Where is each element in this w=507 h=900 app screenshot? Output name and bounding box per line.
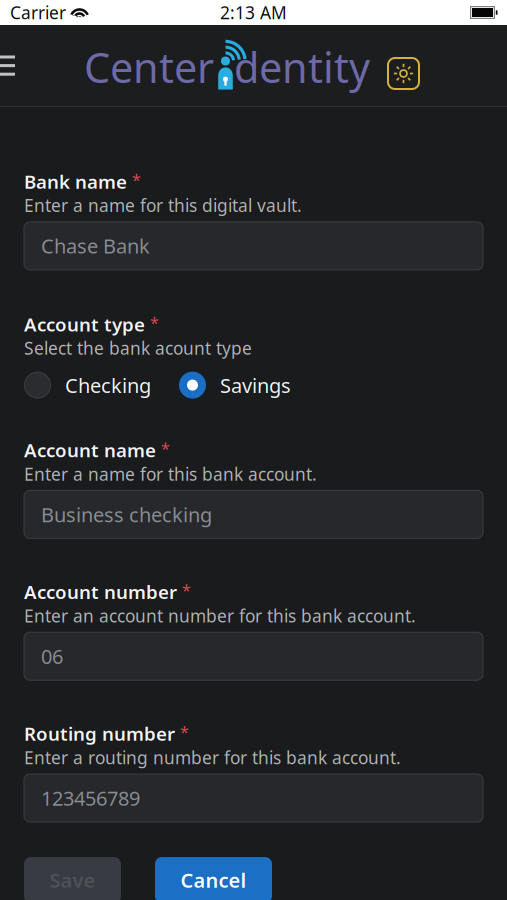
staticText: Carrier [10,1,66,24]
staticText: Enter a name for this bank account. [24,462,317,485]
staticText: Routing number [24,721,175,746]
button[interactable]: Checking [24,372,151,399]
staticText: Save [49,867,95,893]
button[interactable]: Chase Bank [24,222,483,270]
staticText: Enter an account number for this bank ac… [24,604,416,627]
staticText: Savings [220,372,291,398]
staticText: * [150,312,159,333]
button[interactable]: 06 [24,632,483,680]
button[interactable]: Savings [179,372,291,399]
staticText: Select the bank acount type [24,337,252,360]
staticText: Enter a name for this digital vault. [24,194,302,217]
staticText: Account type [24,312,145,337]
staticText: Business checking [41,501,212,528]
staticText: * [132,169,141,190]
button[interactable]: Business checking [24,490,483,538]
staticText: dentity [234,40,370,94]
staticText: Account number [24,579,177,604]
staticText: * [182,579,191,601]
staticText: * [161,438,170,459]
staticText: 06 [41,643,63,670]
staticText: 2:13 AM [220,1,287,24]
staticText: Chase Bank [41,232,150,259]
staticText: Cancel [180,867,246,893]
button[interactable]: Cancel [155,857,272,900]
button[interactable]: 123456789 [24,774,483,822]
button[interactable]: Open menu [0,25,15,106]
staticText: Checking [65,372,151,398]
button[interactable]: Switch to light mode [388,42,419,89]
staticText: Bank name [24,169,127,194]
staticText: Center [84,40,214,94]
staticText: * [180,721,189,742]
button[interactable]: Save [24,857,121,900]
staticText: Account name [24,438,156,462]
staticText: 123456789 [41,785,140,811]
staticText: Enter a routing number for this bank acc… [24,746,401,769]
